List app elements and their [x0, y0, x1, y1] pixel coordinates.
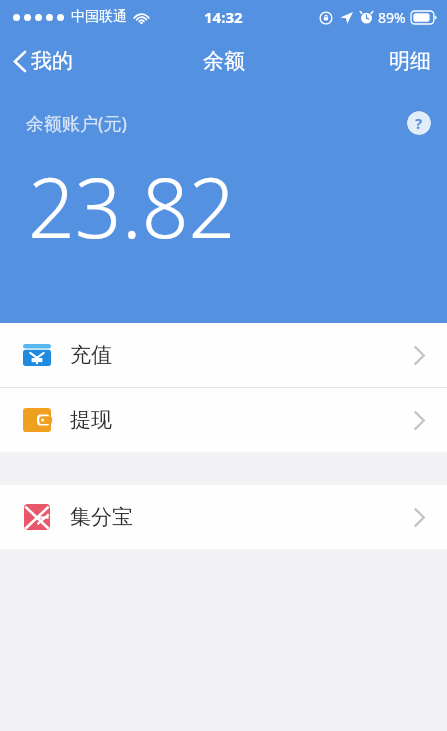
- staticText: 中国联通: [71, 8, 127, 26]
- staticText: 14:32: [204, 7, 243, 27]
- staticText: 明细: [389, 48, 431, 74]
- staticText: 集分宝: [70, 504, 133, 530]
- button[interactable]: 我的: [0, 40, 87, 82]
- button[interactable]: 集分宝: [0, 485, 447, 549]
- button[interactable]: 明细: [373, 40, 447, 82]
- staticText: 89%: [378, 8, 406, 27]
- staticText: 余额: [203, 48, 245, 74]
- staticText: 我的: [31, 48, 73, 74]
- staticText: 充值: [70, 342, 112, 368]
- button[interactable]: Help: [407, 111, 431, 135]
- staticText: 23.82: [28, 150, 236, 262]
- button[interactable]: 提现: [0, 388, 447, 452]
- staticText: 提现: [70, 407, 112, 433]
- button[interactable]: 充值: [0, 323, 447, 387]
- staticText: 余额账户(元): [26, 111, 127, 136]
- staticText: ?: [415, 113, 423, 133]
